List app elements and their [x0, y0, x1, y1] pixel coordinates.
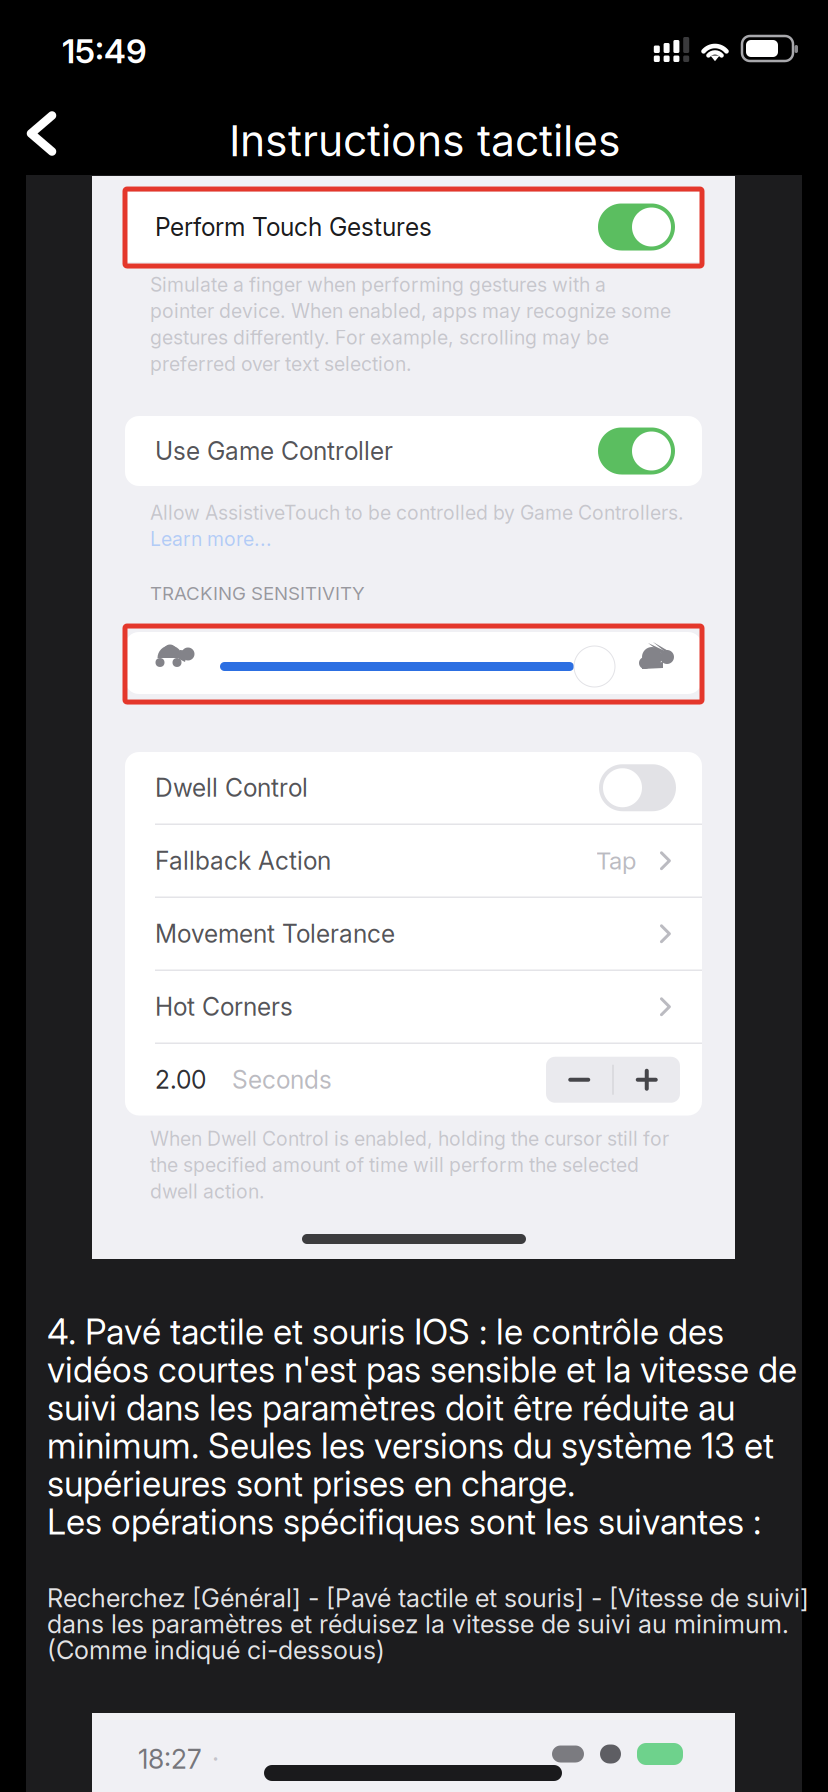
- staticText: Learn more...: [150, 527, 272, 551]
- staticText: preferred over text selection.: [150, 352, 412, 376]
- staticText: dans les paramètres et réduisez la vites…: [47, 1609, 789, 1639]
- staticText: dwell action.: [150, 1180, 265, 1203]
- staticText: supérieures sont prises en charge.: [47, 1463, 575, 1505]
- staticText: Tap: [596, 846, 636, 875]
- button[interactable]: Back: [0, 93, 82, 173]
- staticText: ·: [212, 1743, 219, 1775]
- staticText: gestures differently. For example, scrol…: [150, 326, 609, 349]
- staticText: 4. Pavé tactile et souris IOS : le contr…: [47, 1311, 724, 1353]
- staticText: Les opérations spécifiques sont les suiv…: [47, 1501, 761, 1543]
- staticText: Allow AssistiveTouch to be controlled by…: [150, 501, 684, 524]
- staticText: Seconds: [232, 1065, 332, 1095]
- staticText: Use Game Controller: [155, 436, 393, 466]
- staticText: TRACKING SENSITIVITY: [150, 582, 365, 605]
- staticText: Simulate a finger when performing gestur…: [150, 273, 606, 296]
- staticText: 15:49: [62, 31, 147, 71]
- staticText: Fallback Action: [155, 846, 331, 876]
- staticText: Recherchez [Général] - [Pavé tactile et …: [47, 1583, 809, 1613]
- staticText: minimum. Seules les versions du système …: [47, 1425, 774, 1467]
- staticText: 2.00: [155, 1065, 206, 1095]
- staticText: suivi dans les paramètres doit être rédu…: [47, 1387, 735, 1429]
- staticText: 18:27: [138, 1743, 202, 1775]
- staticText: Hot Corners: [155, 992, 293, 1022]
- staticText: (Comme indiqué ci-dessous): [47, 1635, 385, 1665]
- staticText: Instructions tactiles: [229, 115, 621, 167]
- staticText: Perform Touch Gestures: [155, 212, 432, 242]
- staticText: Dwell Control: [155, 773, 308, 803]
- staticText: the specified amount of time will perfor…: [150, 1153, 639, 1177]
- staticText: vidéos courtes n'est pas sensible et la …: [47, 1349, 797, 1391]
- staticText: pointer device. When enabled, apps may r…: [150, 299, 671, 323]
- staticText: When Dwell Control is enabled, holding t…: [150, 1127, 669, 1150]
- staticText: Movement Tolerance: [155, 919, 395, 949]
